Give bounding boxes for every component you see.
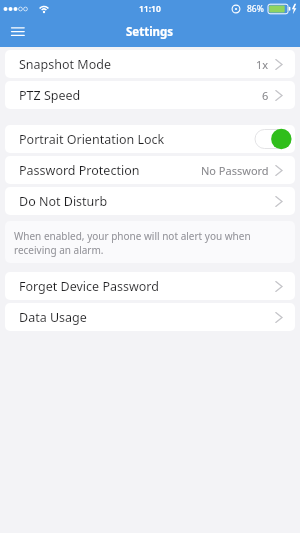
staticText: Password Protection [19, 162, 140, 179]
staticText: receiving an alarm. [14, 243, 104, 257]
staticText: 1x [256, 57, 269, 72]
staticText: Snapshot Mode [19, 56, 111, 73]
staticText: 86% [247, 3, 264, 15]
staticText: PTZ Speed [19, 87, 81, 104]
staticText: Data Usage [19, 309, 87, 326]
staticText: Portrait Orientation Lock [19, 131, 165, 148]
staticText: Settings [126, 24, 174, 40]
staticText: No Password [201, 163, 269, 178]
staticText: 11:10 [139, 3, 161, 15]
staticText: Do Not Disturb [19, 193, 108, 210]
staticText: 6 [262, 88, 269, 103]
staticText: Forget Device Password [19, 278, 159, 295]
staticText: When enabled, your phone will not alert … [14, 229, 251, 243]
